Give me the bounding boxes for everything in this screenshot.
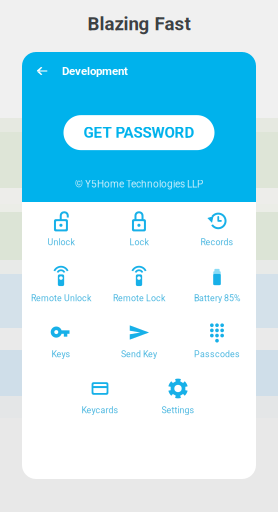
button[interactable]: Records <box>178 206 256 262</box>
button[interactable]: Passcodes <box>178 318 256 374</box>
button[interactable]: GET PASSWORD <box>63 115 214 150</box>
button[interactable]: Back <box>22 59 56 83</box>
button[interactable]: Keycards <box>61 374 139 430</box>
button[interactable]: Keys <box>22 318 100 374</box>
staticText: Unlock <box>47 237 74 247</box>
button[interactable]: Unlock <box>22 206 100 262</box>
staticText: Keys <box>51 349 70 359</box>
staticText: Keycards <box>81 405 118 415</box>
button[interactable]: Remote Unlock <box>22 262 100 318</box>
button[interactable]: Lock <box>100 206 178 262</box>
button[interactable]: Settings <box>139 374 217 430</box>
staticText: © Y5Home Technologies LLP <box>75 178 203 190</box>
button[interactable]: Battery 85% <box>178 262 256 318</box>
button[interactable]: Send Key <box>100 318 178 374</box>
staticText: Battery 85% <box>194 293 240 303</box>
staticText: GET PASSWORD <box>83 124 194 141</box>
staticText: Development <box>62 64 128 78</box>
staticText: Passcodes <box>194 349 240 359</box>
staticText: Send Key <box>121 349 157 359</box>
staticText: Records <box>200 237 233 247</box>
staticText: Remote Unlock <box>31 293 91 303</box>
staticText: Settings <box>161 405 194 415</box>
button[interactable]: Remote Lock <box>100 262 178 318</box>
staticText: Blazing Fast <box>87 13 190 35</box>
staticText: Remote Lock <box>113 293 165 303</box>
staticText: Lock <box>129 237 148 247</box>
